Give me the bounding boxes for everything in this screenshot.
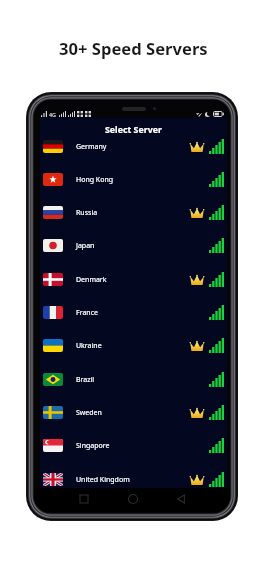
staticText: Select Server [105, 124, 162, 136]
staticText: Denmark [76, 275, 107, 285]
button[interactable]: Germany [40, 130, 227, 163]
button[interactable]: United Kingdom [40, 463, 227, 496]
staticText: Russia [76, 208, 98, 218]
button[interactable]: Ukraine [40, 329, 227, 362]
staticText: Brazil [76, 375, 95, 385]
button[interactable]: Sweden [40, 396, 227, 429]
button[interactable]: Recents [73, 488, 95, 510]
button[interactable]: Singapore [40, 429, 227, 462]
staticText: Hong Kong [76, 175, 114, 185]
staticText: 30+ Speed Servers [59, 37, 208, 60]
button[interactable]: Hong Kong [40, 163, 227, 196]
staticText: Ukraine [76, 341, 102, 351]
staticText: Japan [76, 241, 95, 251]
button[interactable]: Brazil [40, 363, 227, 396]
button[interactable]: Home [122, 488, 144, 510]
staticText: Singapore [76, 441, 110, 451]
staticText: 4G [49, 111, 57, 117]
button[interactable]: Russia [40, 196, 227, 229]
button[interactable]: Select Server [40, 122, 227, 138]
button[interactable]: Japan [40, 229, 227, 262]
staticText: United Kingdom [76, 475, 130, 485]
button[interactable]: Denmark [40, 263, 227, 296]
staticText: France [76, 308, 98, 318]
button[interactable]: France [40, 296, 227, 329]
staticText: Sweden [76, 408, 102, 418]
button[interactable]: Back [170, 488, 192, 510]
staticText: Germany [76, 142, 107, 152]
